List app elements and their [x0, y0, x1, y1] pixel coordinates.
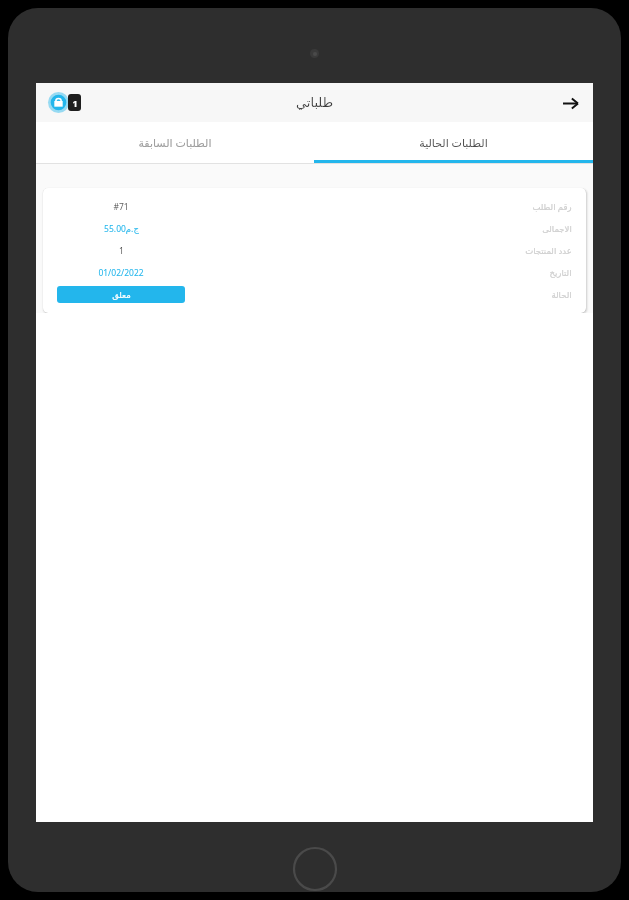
staticText: 1 [119, 245, 124, 257]
button[interactable]: Back [557, 90, 583, 116]
staticText: 01/02/2022 [98, 267, 144, 279]
button[interactable]: #71 [43, 188, 586, 313]
staticText: 1 [72, 97, 78, 109]
button[interactable]: Cart, 1 item [46, 90, 84, 115]
staticText: رقم الطلب [532, 201, 572, 213]
button[interactable]: الطلبات السابقة [36, 122, 314, 163]
staticText: طلباتي [296, 95, 333, 110]
staticText: الطلبات الحالية [419, 135, 488, 150]
staticText: الاجمالى [542, 224, 572, 234]
staticText: الحالة [551, 290, 572, 300]
staticText: 55.00ج.م [104, 223, 139, 235]
staticText: عدد المنتجات [525, 245, 572, 257]
staticText: التاريخ [549, 268, 572, 278]
staticText: معلق [112, 290, 131, 300]
staticText: #71 [113, 201, 129, 213]
staticText: الطلبات السابقة [138, 135, 212, 150]
button[interactable]: معلق [57, 286, 185, 303]
button[interactable]: الطلبات الحالية [314, 122, 593, 163]
